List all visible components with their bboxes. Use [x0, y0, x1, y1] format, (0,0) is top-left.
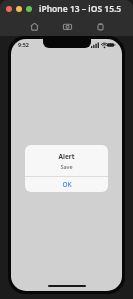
button[interactable]: Close [6, 6, 12, 12]
button[interactable]: Screenshot [60, 19, 74, 33]
button[interactable]: Maximize [26, 6, 32, 12]
staticText: 9:52 [18, 41, 29, 48]
button[interactable]: Home [27, 19, 41, 33]
button[interactable]: Rotate [93, 19, 107, 33]
button[interactable]: Minimize [16, 6, 22, 12]
staticText: iPhone 13 – iOS 15.5 [39, 3, 122, 15]
button[interactable]: OK [25, 177, 108, 192]
staticText: OK [62, 180, 72, 189]
staticText: Alert [58, 152, 75, 161]
staticText: Save [60, 163, 73, 170]
